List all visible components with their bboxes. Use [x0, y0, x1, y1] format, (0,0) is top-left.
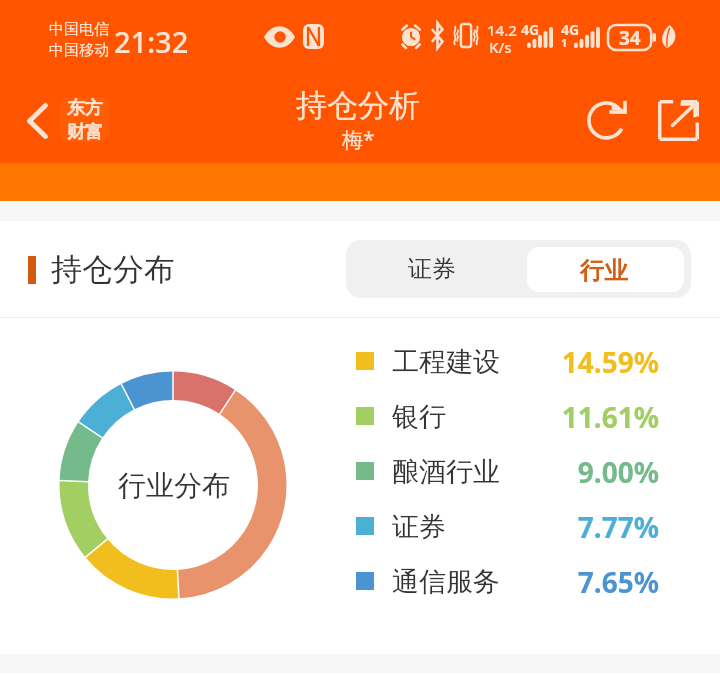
staticText: 21:32 [114, 22, 189, 61]
staticText: 通信服务 [392, 565, 500, 599]
button[interactable]: 工程建设 [356, 333, 659, 388]
staticText: 证券 [408, 254, 456, 284]
staticText: 梅* [342, 125, 375, 154]
button[interactable]: 银行 [356, 388, 659, 443]
button[interactable]: Share [648, 86, 708, 154]
button[interactable]: 通信服务 [356, 553, 659, 608]
staticText: 4G [561, 20, 580, 39]
staticText: 酿酒行业 [392, 455, 500, 489]
staticText: 财富 [67, 121, 103, 142]
staticText: K/s [489, 37, 512, 57]
staticText: 持仓分布 [51, 250, 175, 289]
button[interactable]: 行业 [527, 247, 684, 292]
staticText: 9.00% [577, 453, 659, 491]
staticText: 14.59% [561, 343, 659, 381]
button[interactable]: Back [14, 91, 60, 151]
button[interactable]: 证券 [352, 246, 520, 292]
button[interactable]: 东方 [60, 97, 109, 142]
staticText: 7.65% [577, 563, 659, 601]
staticText: 中国移动 [49, 41, 109, 60]
button[interactable]: 证券 [356, 498, 659, 553]
staticText: 证券 [392, 510, 446, 544]
staticText: 银行 [392, 400, 446, 434]
button[interactable]: Refresh [578, 83, 638, 151]
staticText: 持仓分析 [296, 86, 420, 125]
staticText: 工程建设 [392, 345, 500, 379]
staticText: 14.2 [487, 20, 517, 40]
staticText: 行业 [580, 256, 628, 286]
staticText: 7.77% [577, 508, 659, 546]
staticText: 中国电信 [49, 20, 109, 39]
staticText: 34 [619, 25, 641, 50]
staticText: 4G [521, 20, 540, 39]
staticText: 东方 [67, 97, 103, 120]
staticText: 行业分布 [118, 468, 230, 503]
staticText: 1 [561, 35, 568, 50]
staticText: 11.61% [561, 398, 659, 436]
button[interactable]: 酿酒行业 [356, 443, 659, 498]
